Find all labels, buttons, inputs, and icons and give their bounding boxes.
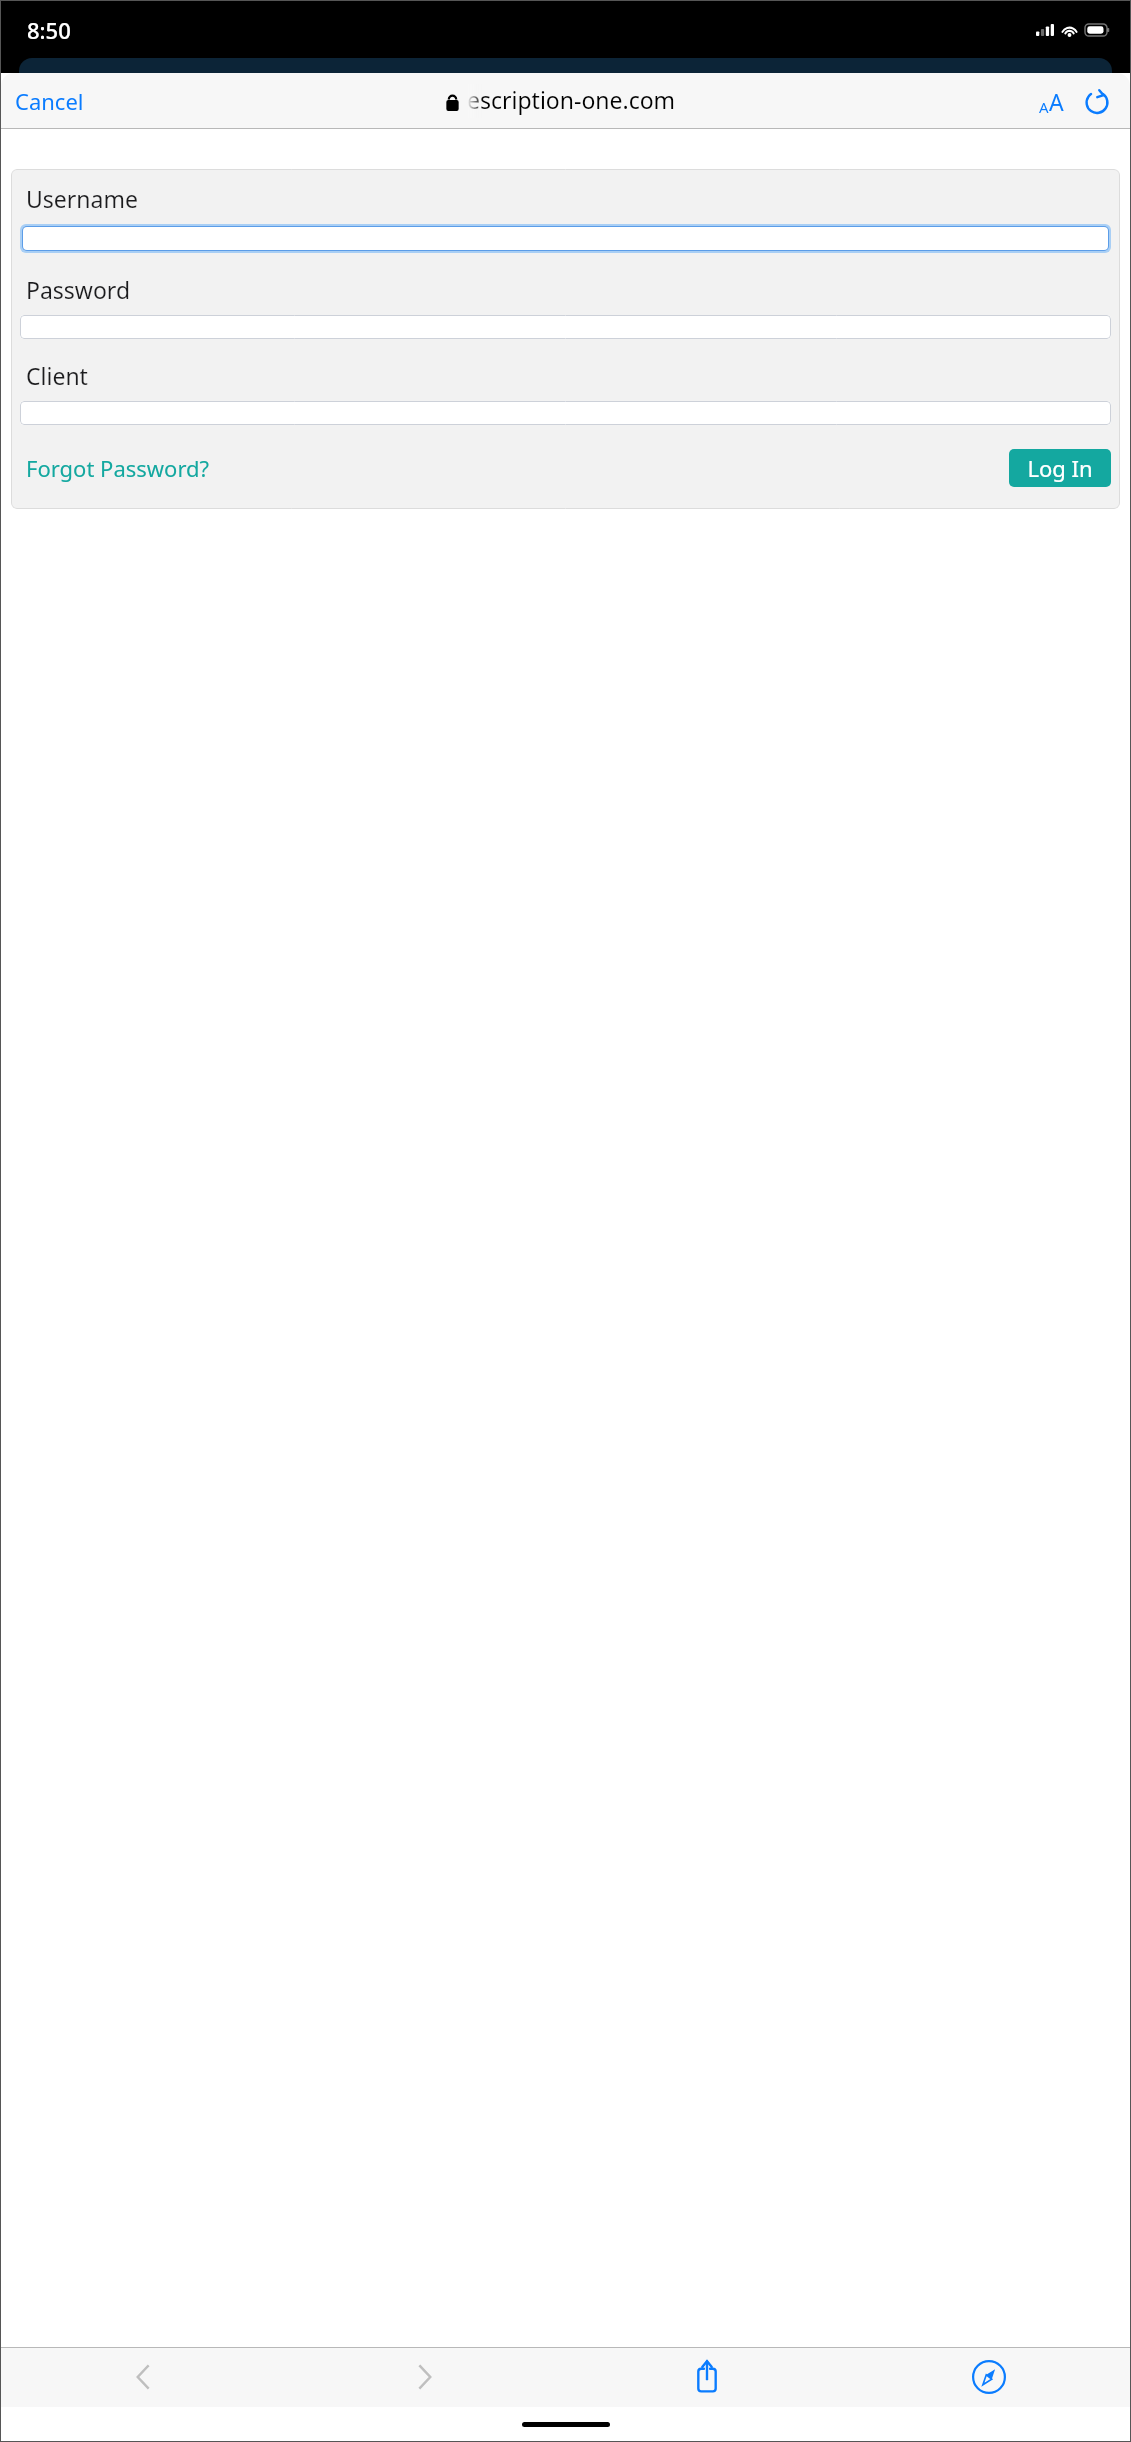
button[interactable]: Forgot Password?: [20, 445, 218, 491]
staticText: A: [1039, 97, 1049, 117]
staticText: Password: [26, 274, 131, 305]
button[interactable]: Share: [566, 2347, 848, 2407]
button[interactable]: Text size: [1029, 80, 1074, 123]
button[interactable]: Forward: [284, 2347, 566, 2407]
button[interactable]: Back: [1, 2347, 284, 2407]
staticText: Username: [26, 183, 138, 214]
button[interactable]: Text field: [20, 315, 1111, 339]
button[interactable]: Log In: [1009, 449, 1111, 487]
staticText: escription-one.com: [467, 84, 676, 115]
staticText: 8:50: [27, 15, 71, 45]
staticText: Client: [26, 360, 88, 391]
button[interactable]: Cancel: [1, 80, 92, 122]
button[interactable]: Reload: [1074, 82, 1130, 120]
staticText: A: [1049, 86, 1064, 117]
staticText: Cancel: [15, 86, 84, 116]
button[interactable]: Open in Safari: [848, 2347, 1130, 2407]
staticText: Log In: [1027, 453, 1093, 483]
staticText: Forgot Password?: [26, 453, 210, 483]
button[interactable]: Text field: [20, 401, 1111, 425]
button[interactable]: escription-one.com: [445, 84, 676, 118]
